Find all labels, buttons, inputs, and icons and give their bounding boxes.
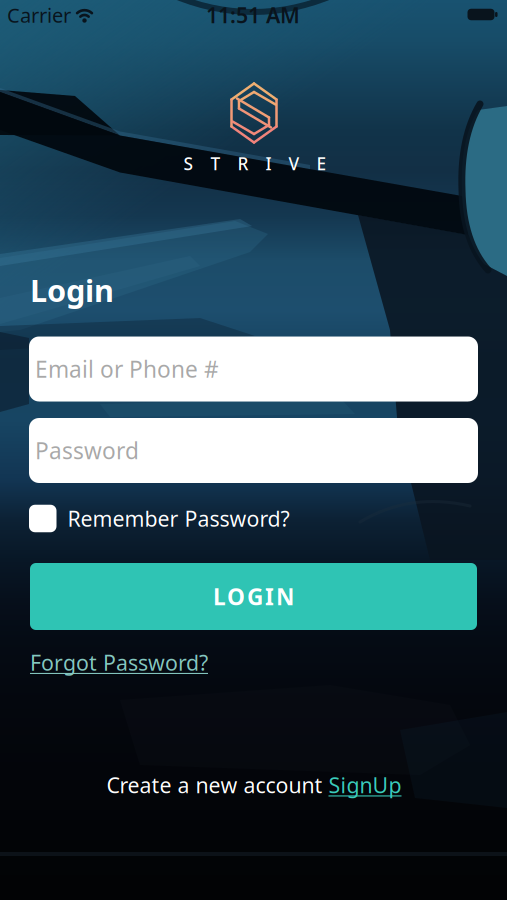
button[interactable]: Forgot Password? bbox=[30, 648, 208, 677]
staticText: Forgot Password? bbox=[30, 648, 208, 677]
staticText: Login bbox=[30, 270, 114, 310]
staticText: Create a new account bbox=[106, 771, 328, 799]
button[interactable]: Email or Phone # bbox=[29, 336, 478, 401]
staticText: Email or Phone # bbox=[35, 354, 219, 384]
button[interactable]: Password bbox=[29, 418, 478, 483]
staticText: Remember Password? bbox=[67, 504, 289, 533]
staticText: SignUp bbox=[328, 771, 401, 799]
button[interactable]: Remember Password? bbox=[29, 504, 478, 533]
staticText: Carrier bbox=[7, 2, 71, 28]
staticText: STRIVE bbox=[183, 152, 326, 175]
button[interactable]: LOGIN bbox=[30, 563, 477, 630]
staticText: Password bbox=[35, 435, 139, 465]
staticText: 11:51 AM bbox=[206, 1, 300, 29]
button[interactable]: SignUp bbox=[328, 771, 401, 799]
staticText: LOGIN bbox=[213, 581, 294, 611]
